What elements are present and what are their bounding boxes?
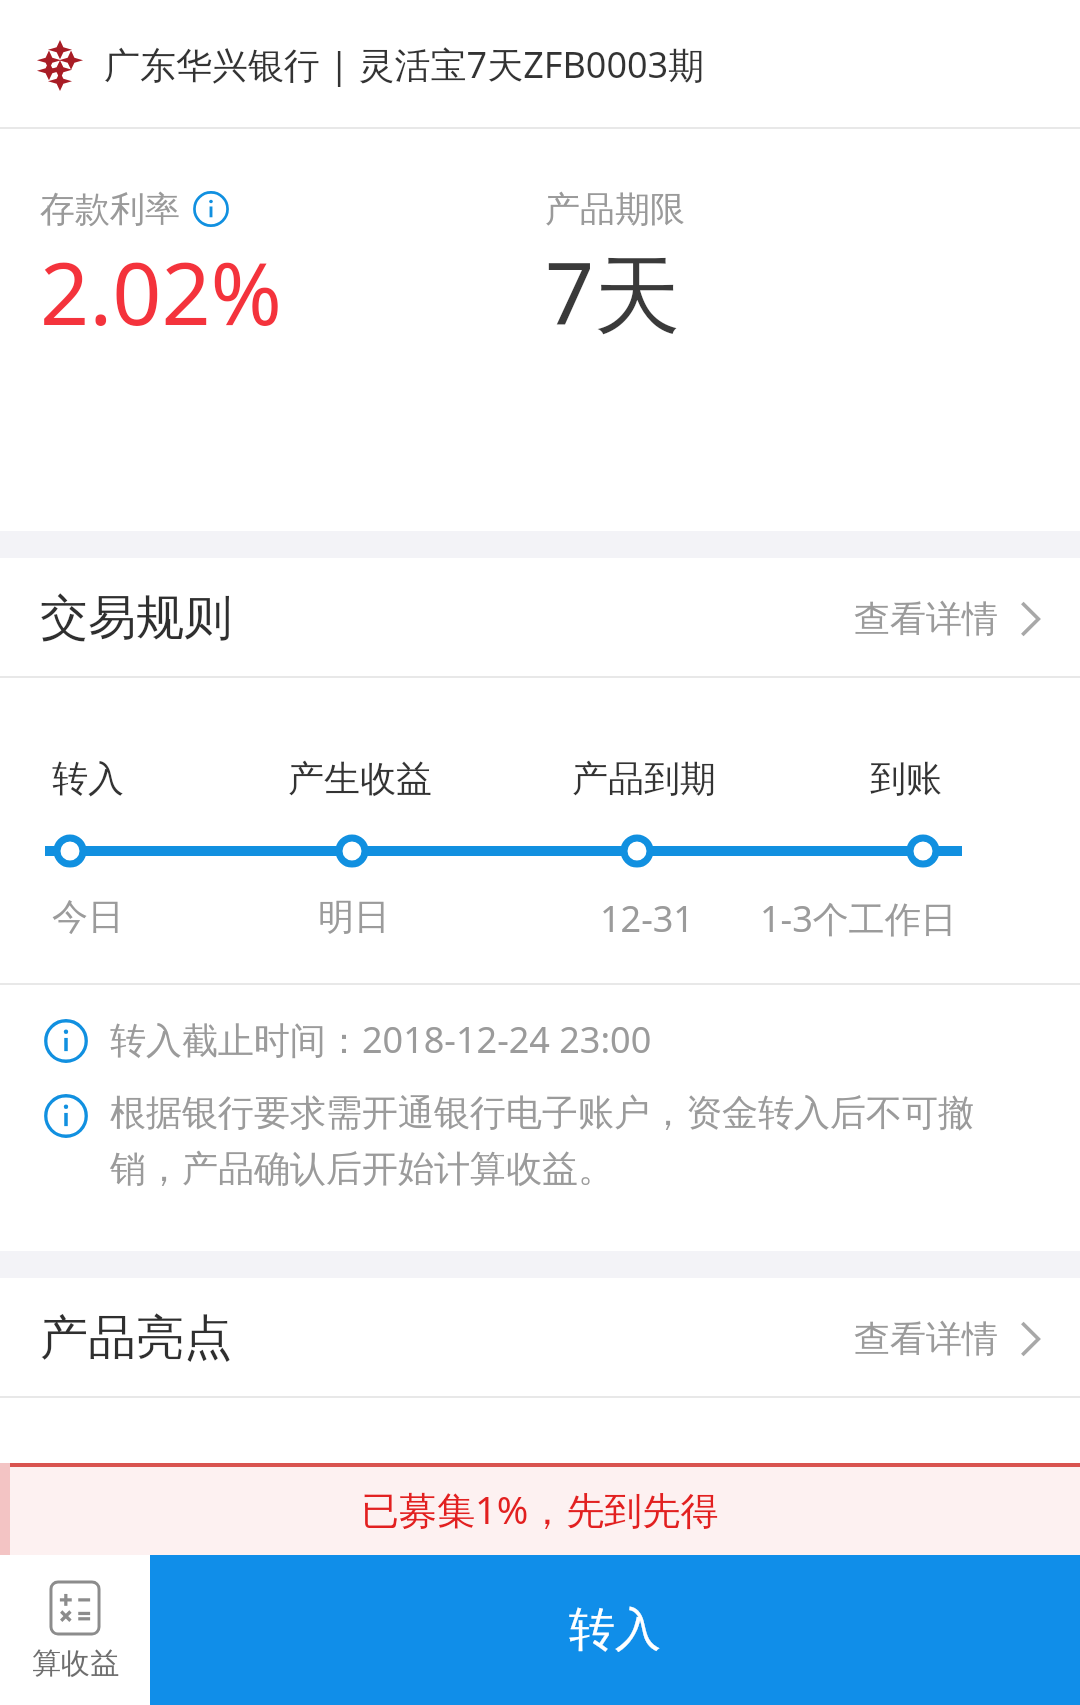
button[interactable]: 广东华兴银行 | 灵活宝7天ZFB0003期 xyxy=(0,0,1080,129)
button[interactable]: 利率说明 xyxy=(192,190,230,228)
staticText: 查看详情 xyxy=(854,1316,998,1361)
staticText: | xyxy=(234,519,252,563)
staticText: 12-31 xyxy=(600,894,694,943)
staticText: 已募集1%，先到先得 xyxy=(361,1483,719,1535)
staticText: 广东华兴银行 | 灵活宝7天ZFB0003期 xyxy=(104,40,705,89)
staticText: 存款利率 xyxy=(40,187,180,231)
staticText: 转入截止时间：2018-12-24 23:00 xyxy=(110,1015,652,1064)
staticText: 产生收益 xyxy=(288,756,432,801)
staticText: 2.02% xyxy=(40,233,283,350)
staticText: | xyxy=(446,519,464,563)
button[interactable]: 算收益 xyxy=(0,1555,150,1705)
staticText: 产品到期 xyxy=(572,756,716,801)
staticText: 产品期限 xyxy=(545,187,685,231)
staticText: 1-3个工作日 xyxy=(760,894,957,943)
button[interactable]: 转入 xyxy=(150,1555,1080,1705)
staticText: 低风险 xyxy=(100,516,220,566)
staticText: 到账 xyxy=(870,756,942,801)
staticText: 转入 xyxy=(569,1601,661,1659)
button[interactable]: 交易规则 xyxy=(0,558,1080,678)
button[interactable]: 产品亮点 xyxy=(0,1278,1080,1398)
staticText: 算收益 xyxy=(32,1645,119,1682)
staticText: 7天 xyxy=(545,233,681,350)
staticText: 产品亮点 xyxy=(40,1308,232,1368)
staticText: 交易规则 xyxy=(40,588,232,648)
staticText: 查看详情 xyxy=(854,596,998,641)
staticText: 根据银行要求需开通银行电子账户，资金转入后不可撤销，产品确认后开始计算收益。 xyxy=(110,1090,1010,1192)
staticText: 50元起购 xyxy=(266,513,432,568)
staticText: 转入 xyxy=(52,756,124,801)
staticText: 今日 xyxy=(52,894,124,939)
staticText: 明日 xyxy=(318,894,390,939)
staticText: 保本 xyxy=(478,516,558,566)
